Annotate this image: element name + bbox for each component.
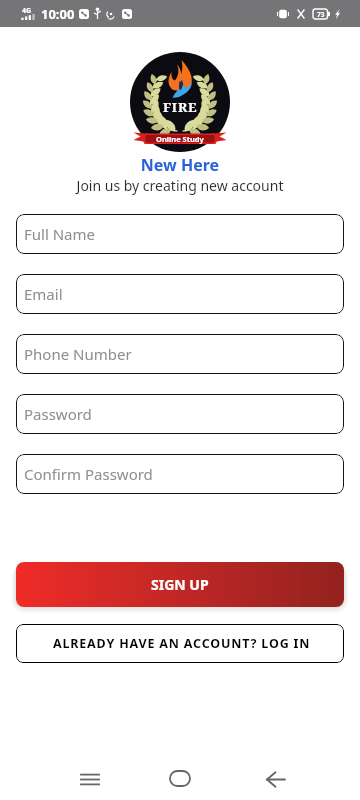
- button[interactable]: SIGN UP: [16, 562, 344, 607]
- staticText: SIGN UP: [151, 575, 209, 594]
- staticText: 4G: [22, 6, 32, 16]
- button[interactable]: Home: [156, 754, 204, 800]
- staticText: 10:00: [41, 5, 75, 23]
- button[interactable]: Confirm Password: [16, 454, 344, 494]
- button[interactable]: ALREADY HAVE AN ACCOUNT? LOG IN: [16, 624, 344, 663]
- staticText: Phone Number: [24, 344, 132, 364]
- staticText: Full Name: [24, 224, 95, 244]
- staticText: ALREADY HAVE AN ACCOUNT? LOG IN: [53, 635, 311, 652]
- button[interactable]: Back: [251, 755, 299, 800]
- button[interactable]: Password: [16, 394, 344, 434]
- button[interactable]: Recents: [66, 755, 114, 800]
- staticText: Online Study: [156, 134, 204, 144]
- button[interactable]: Full Name: [16, 214, 344, 254]
- staticText: 73: [317, 10, 325, 19]
- staticText: Join us by creating new account: [0, 176, 360, 195]
- staticText: FIRE: [163, 98, 198, 116]
- button[interactable]: Email: [16, 274, 344, 314]
- staticText: Password: [24, 404, 92, 424]
- button[interactable]: Phone Number: [16, 334, 344, 374]
- staticText: Email: [24, 284, 63, 304]
- staticText: Confirm Password: [24, 464, 153, 484]
- staticText: New Here: [0, 154, 360, 176]
